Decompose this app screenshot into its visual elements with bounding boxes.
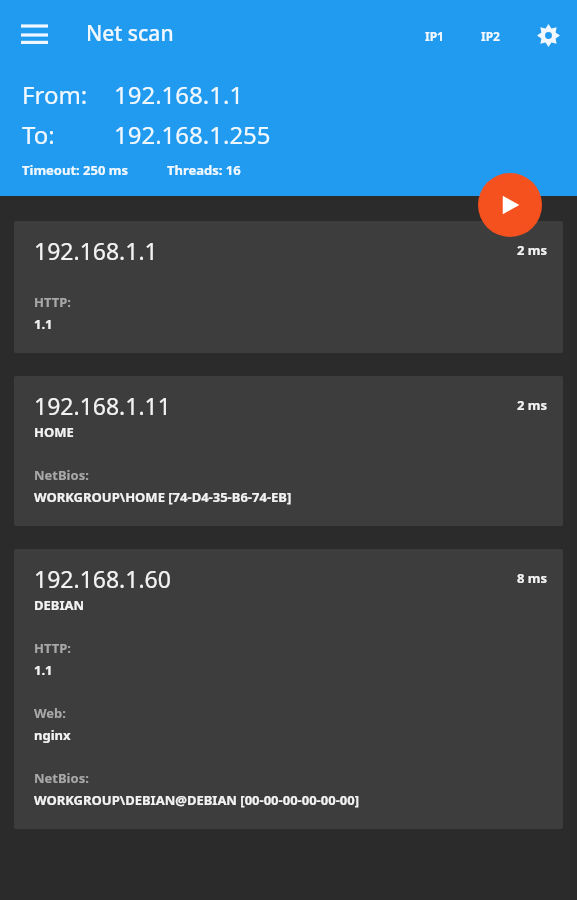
staticText: IP1	[425, 28, 444, 44]
staticText: HTTP:	[34, 639, 71, 657]
staticText: 1.1	[34, 661, 53, 679]
button[interactable]: IP1	[412, 18, 456, 54]
staticText: nginx	[34, 726, 71, 744]
staticText: DEBIAN	[34, 596, 85, 614]
button[interactable]: Settings	[528, 16, 568, 54]
staticText: From:	[22, 78, 88, 111]
staticText: IP2	[481, 28, 500, 44]
staticText: 192.168.1.1	[114, 78, 244, 111]
staticText: 8 ms	[516, 569, 547, 587]
staticText: 192.168.1.255	[114, 118, 271, 151]
staticText: HOME	[34, 423, 74, 441]
button[interactable]: Menu	[14, 16, 54, 54]
staticText: NetBios:	[34, 466, 89, 484]
button[interactable]: 2 ms	[14, 221, 563, 353]
button[interactable]: 2 ms	[14, 376, 563, 526]
staticText: 192.168.1.11	[34, 390, 171, 421]
staticText: 2 ms	[516, 241, 547, 259]
button[interactable]: Net scan	[86, 19, 174, 48]
staticText: 192.168.1.60	[34, 563, 171, 594]
staticText: WORKGROUP\DEBIAN@DEBIAN [00-00-00-00-00-…	[34, 791, 359, 809]
staticText: Net scan	[86, 19, 174, 48]
staticText: WORKGROUP\HOME [74-D4-35-B6-74-EB]	[34, 488, 292, 506]
staticText: Web:	[34, 704, 66, 722]
button[interactable]: 8 ms	[14, 549, 563, 829]
staticText: 192.168.1.1	[34, 235, 158, 266]
staticText: Threads: 16	[167, 161, 241, 179]
staticText: 2 ms	[516, 396, 547, 414]
staticText: 1.1	[34, 315, 53, 333]
staticText: NetBios:	[34, 769, 89, 787]
button[interactable]: Start scan	[478, 173, 542, 237]
staticText: Timeout: 250 ms	[22, 161, 128, 179]
staticText: To:	[22, 118, 55, 151]
staticText: HTTP:	[34, 293, 71, 311]
button[interactable]: IP2	[468, 18, 512, 54]
